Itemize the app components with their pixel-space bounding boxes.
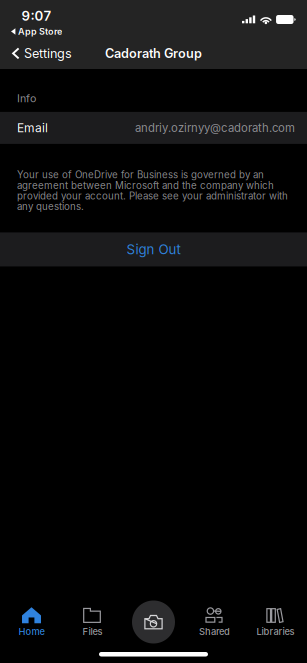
staticText: Files: [82, 626, 102, 637]
button[interactable]: Libraries: [245, 599, 306, 645]
button[interactable]: Settings: [0, 40, 78, 67]
button[interactable]: Shared: [184, 599, 245, 645]
staticText: Home: [18, 626, 44, 637]
staticText: Sign Out: [126, 241, 180, 257]
staticText: 9:07: [22, 8, 52, 24]
staticText: Your use of OneDrive for Business is gov…: [17, 169, 288, 212]
staticText: Shared: [199, 626, 230, 637]
staticText: Cadorath Group: [105, 46, 202, 61]
staticText: Libraries: [256, 626, 294, 637]
button[interactable]: Home: [1, 599, 62, 645]
staticText: Email: [17, 121, 48, 135]
staticText: Settings: [24, 46, 72, 61]
button[interactable]: Files: [62, 599, 123, 645]
button[interactable]: Sign Out: [0, 232, 307, 266]
staticText: andriy.ozirnyy@cadorath.com: [135, 121, 295, 135]
button[interactable]: Camera: [123, 599, 184, 645]
staticText: App Store: [18, 26, 62, 37]
button[interactable]: Email: [0, 112, 307, 144]
staticText: Info: [17, 92, 36, 105]
